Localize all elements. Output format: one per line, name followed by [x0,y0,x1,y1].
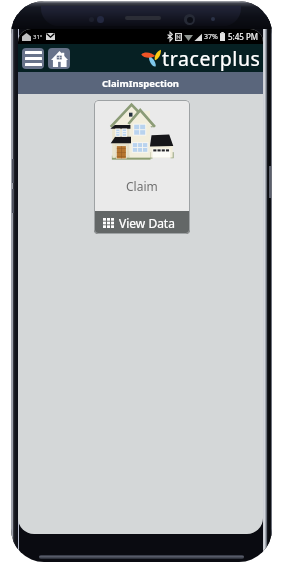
staticText: ClaimInspection [102,77,180,90]
staticText: Claim [126,178,158,194]
button[interactable]: Menu [22,48,44,69]
staticText: tracerplus [162,45,261,72]
staticText: 37% [204,32,218,42]
staticText: View Data [119,215,175,231]
staticText: 31° [33,33,43,41]
staticText: 5:45 PM [228,31,259,42]
button[interactable]: Claim [94,100,190,234]
button[interactable]: Home [48,48,70,69]
